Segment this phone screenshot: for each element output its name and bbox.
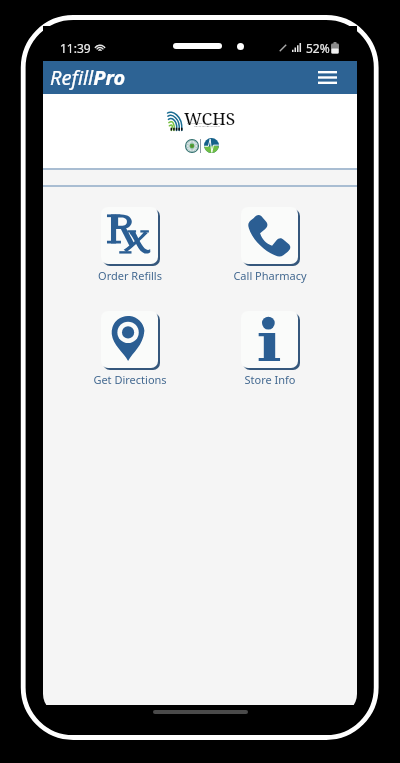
- staticText: HEALTHCARE SYSTEM: [194, 125, 220, 128]
- staticText: 52%: [306, 40, 330, 56]
- staticText: Get Directions: [93, 372, 167, 387]
- staticText: WCHS: [184, 107, 236, 130]
- button[interactable]: Order Refills: [70, 207, 190, 283]
- staticText: WINNEBAGO COMPREHENSIVE: [187, 122, 225, 125]
- button[interactable]: Get Directions: [70, 311, 190, 387]
- button[interactable]: Store Info: [210, 311, 330, 387]
- button[interactable]: Call Pharmacy: [210, 207, 330, 283]
- staticText: RefillPro: [50, 64, 126, 91]
- staticText: Call Pharmacy: [233, 268, 307, 283]
- staticText: Order Refills: [98, 268, 162, 283]
- staticText: Store Info: [244, 372, 296, 387]
- button[interactable]: Open navigation menu: [314, 61, 340, 94]
- staticText: 11:39: [60, 40, 91, 56]
